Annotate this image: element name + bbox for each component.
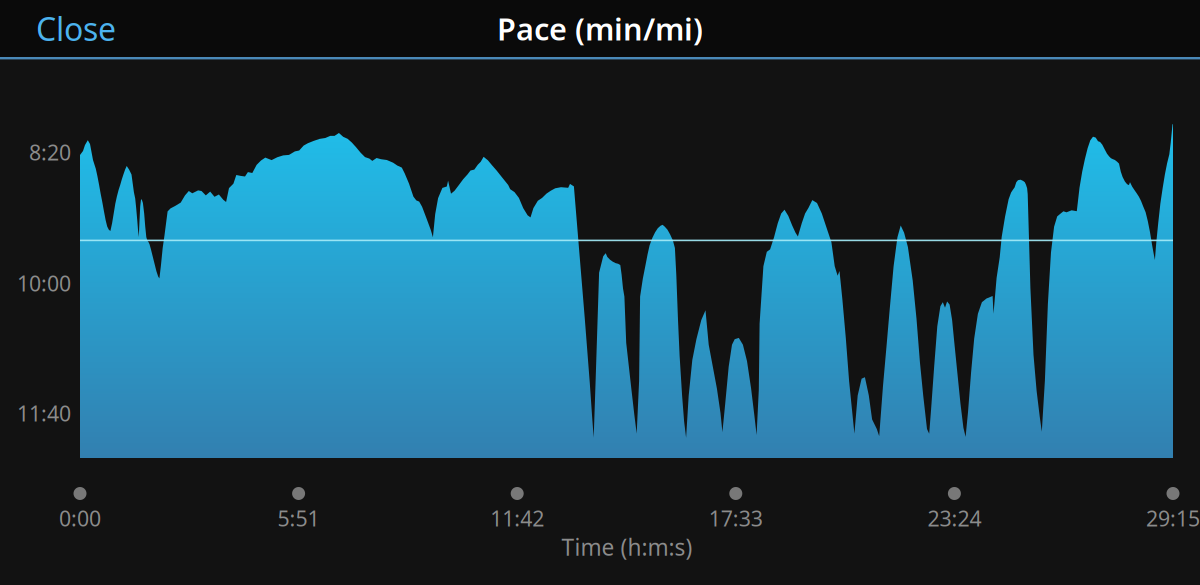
staticText: Time (h:m:s) <box>561 532 692 562</box>
staticText: Pace (min/mi) <box>497 8 703 49</box>
button[interactable]: Close <box>26 6 126 50</box>
staticText: 11:40 <box>17 399 71 427</box>
staticText: 0:00 <box>59 504 101 532</box>
staticText: Close <box>36 7 116 50</box>
staticText: 17:33 <box>709 504 763 532</box>
staticText: 5:51 <box>278 504 320 532</box>
staticText: 8:20 <box>29 138 71 166</box>
staticText: 23:24 <box>927 504 981 532</box>
staticText: 11:42 <box>490 504 544 532</box>
staticText: 10:00 <box>17 269 71 297</box>
staticText: 29:15 <box>1146 504 1200 532</box>
